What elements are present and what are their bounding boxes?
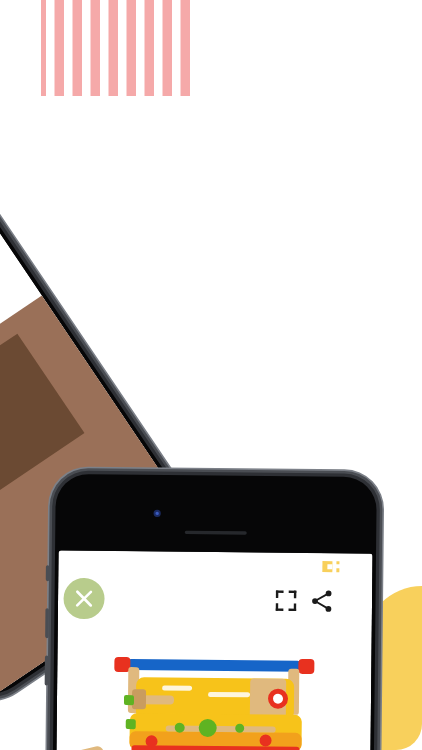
button[interactable]: Close bbox=[66, 566, 108, 608]
button[interactable]: Fullscreen bbox=[286, 568, 320, 602]
button[interactable]: Share bbox=[320, 568, 354, 602]
